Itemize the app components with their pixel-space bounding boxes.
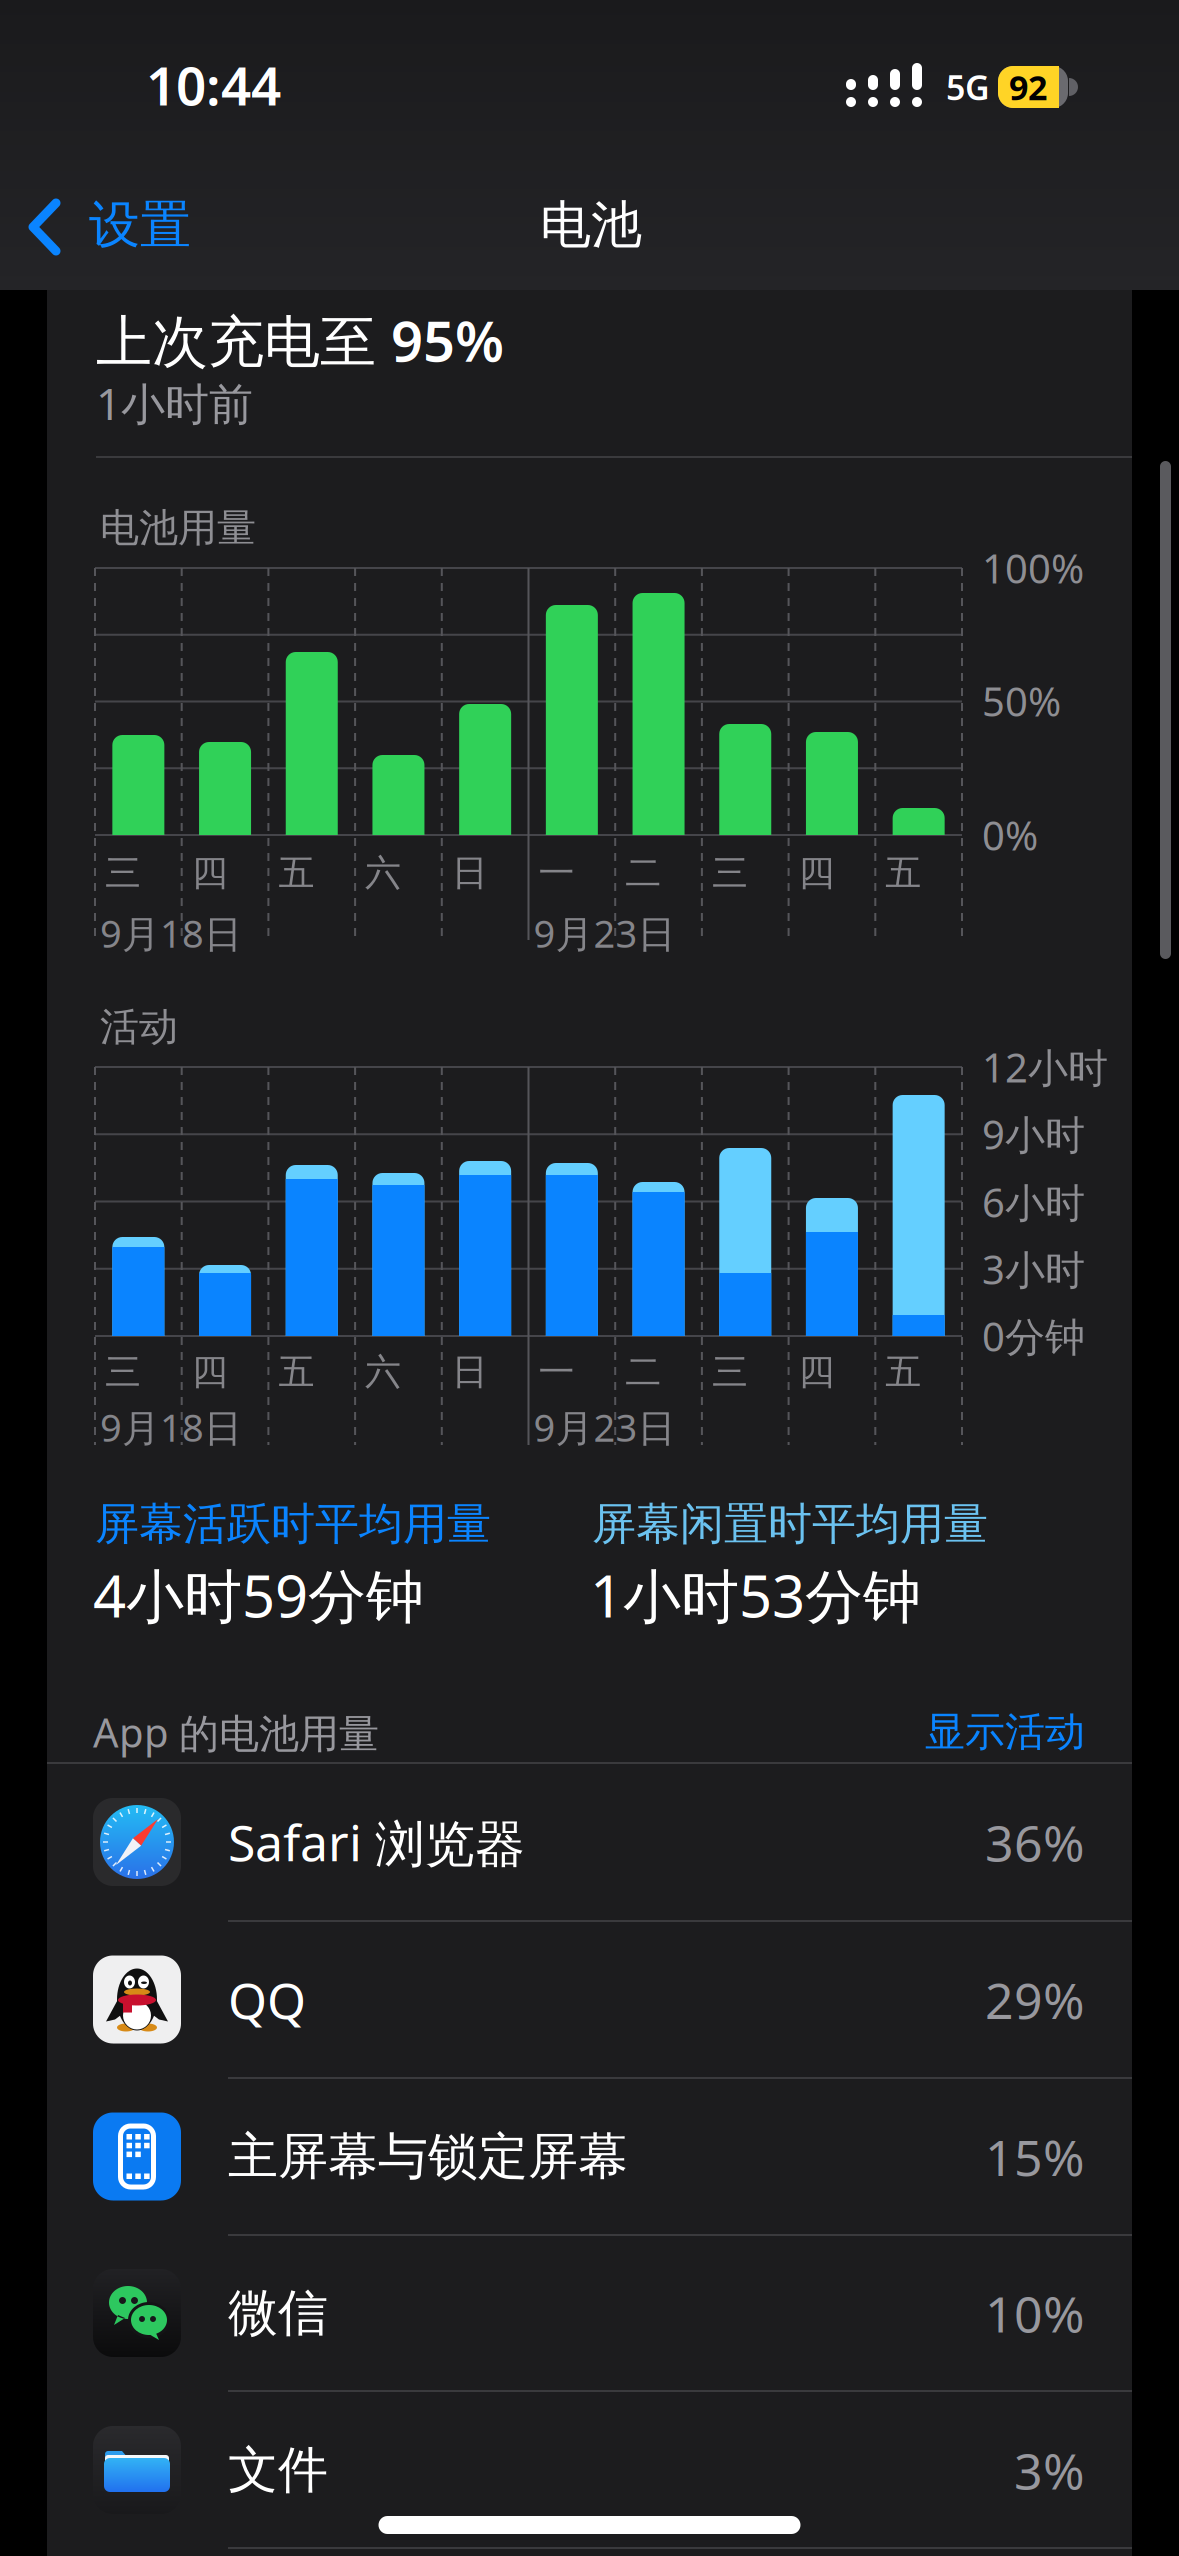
staticText: 活动: [100, 1003, 178, 1051]
staticText: Safari 浏览器: [228, 1809, 525, 1875]
staticText: 日: [452, 851, 488, 895]
staticText: 微信: [228, 2282, 328, 2344]
staticText: QQ: [228, 1966, 306, 2033]
staticText: 五: [885, 851, 921, 895]
staticText: 三: [105, 1350, 141, 1394]
staticText: 3%: [1014, 2437, 1085, 2503]
staticText: 0%: [982, 808, 1038, 861]
staticText: 二: [625, 1350, 661, 1394]
staticText: 4小时59分钟: [93, 1556, 424, 1633]
button[interactable]: 微信: [47, 2234, 1132, 2391]
staticText: 显示活动: [925, 1707, 1085, 1756]
staticText: 9月18日: [100, 1402, 242, 1452]
staticText: 三: [712, 851, 748, 895]
staticText: 四: [799, 851, 835, 895]
staticText: 设置: [89, 194, 191, 256]
button[interactable]: 显示活动: [825, 1707, 1085, 1756]
staticText: App 的电池用量: [93, 1705, 379, 1759]
staticText: 0分钟: [982, 1309, 1085, 1362]
staticText: 29%: [985, 1966, 1085, 2033]
staticText: 9月18日: [100, 908, 242, 958]
staticText: 6小时: [982, 1175, 1085, 1228]
staticText: 二: [625, 851, 661, 895]
staticText: 9月23日: [533, 1402, 675, 1452]
staticText: 9小时: [982, 1107, 1085, 1160]
staticText: 电池用量: [100, 504, 256, 552]
staticText: 日: [452, 1350, 488, 1394]
staticText: 五: [885, 1350, 921, 1394]
staticText: 屏幕闲置时平均用量: [592, 1497, 988, 1551]
staticText: 100%: [982, 541, 1084, 594]
staticText: 92: [1009, 64, 1047, 110]
staticText: 12小时: [982, 1040, 1108, 1093]
staticText: 50%: [982, 674, 1061, 727]
staticText: 四: [192, 1350, 228, 1394]
staticText: 四: [192, 851, 228, 895]
staticText: 六: [365, 851, 401, 895]
staticText: 六: [365, 1350, 401, 1394]
staticText: 五: [278, 1350, 314, 1394]
staticText: 一: [538, 1350, 574, 1394]
staticText: 文件: [228, 2439, 328, 2501]
staticText: 电池: [540, 194, 642, 256]
staticText: 三: [105, 851, 141, 895]
button[interactable]: QQ: [47, 1921, 1132, 2078]
staticText: 15%: [985, 2123, 1085, 2190]
staticText: 四: [799, 1350, 835, 1394]
staticText: 一: [538, 851, 574, 895]
staticText: 五: [278, 851, 314, 895]
staticText: 36%: [985, 1809, 1085, 1875]
button[interactable]: 文件: [47, 2391, 1132, 2548]
staticText: 1小时前: [96, 374, 253, 432]
staticText: 10:44: [146, 50, 281, 120]
button[interactable]: 主屏幕与锁定屏幕: [47, 2078, 1132, 2235]
button[interactable]: 设置: [25, 195, 235, 259]
staticText: 1小时53分钟: [590, 1556, 921, 1633]
staticText: 屏幕活跃时平均用量: [95, 1497, 491, 1551]
staticText: 10%: [985, 2280, 1085, 2346]
staticText: 上次充电至 95%: [96, 303, 504, 377]
staticText: 5G: [946, 64, 990, 110]
staticText: 9月23日: [533, 908, 675, 958]
staticText: 3小时: [982, 1242, 1085, 1295]
button[interactable]: Safari 浏览器: [47, 1763, 1132, 1920]
staticText: 三: [712, 1350, 748, 1394]
staticText: 主屏幕与锁定屏幕: [228, 2126, 628, 2187]
